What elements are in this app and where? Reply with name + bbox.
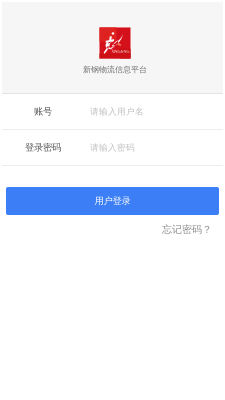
staticText: 用户登录 xyxy=(94,195,130,207)
staticText: XINGANG xyxy=(111,48,129,54)
button[interactable]: 忘记密码？ xyxy=(162,223,212,236)
staticText: 账号 xyxy=(34,106,52,117)
staticText: 新钢物流信息平台 xyxy=(83,64,147,75)
staticText: 登录密码 xyxy=(25,142,61,153)
staticText: 请输入密码 xyxy=(90,142,135,153)
staticText: 忘记密码？ xyxy=(162,223,212,236)
staticText: 请输入用户名 xyxy=(90,106,144,117)
button[interactable]: 用户登录 xyxy=(6,187,219,215)
